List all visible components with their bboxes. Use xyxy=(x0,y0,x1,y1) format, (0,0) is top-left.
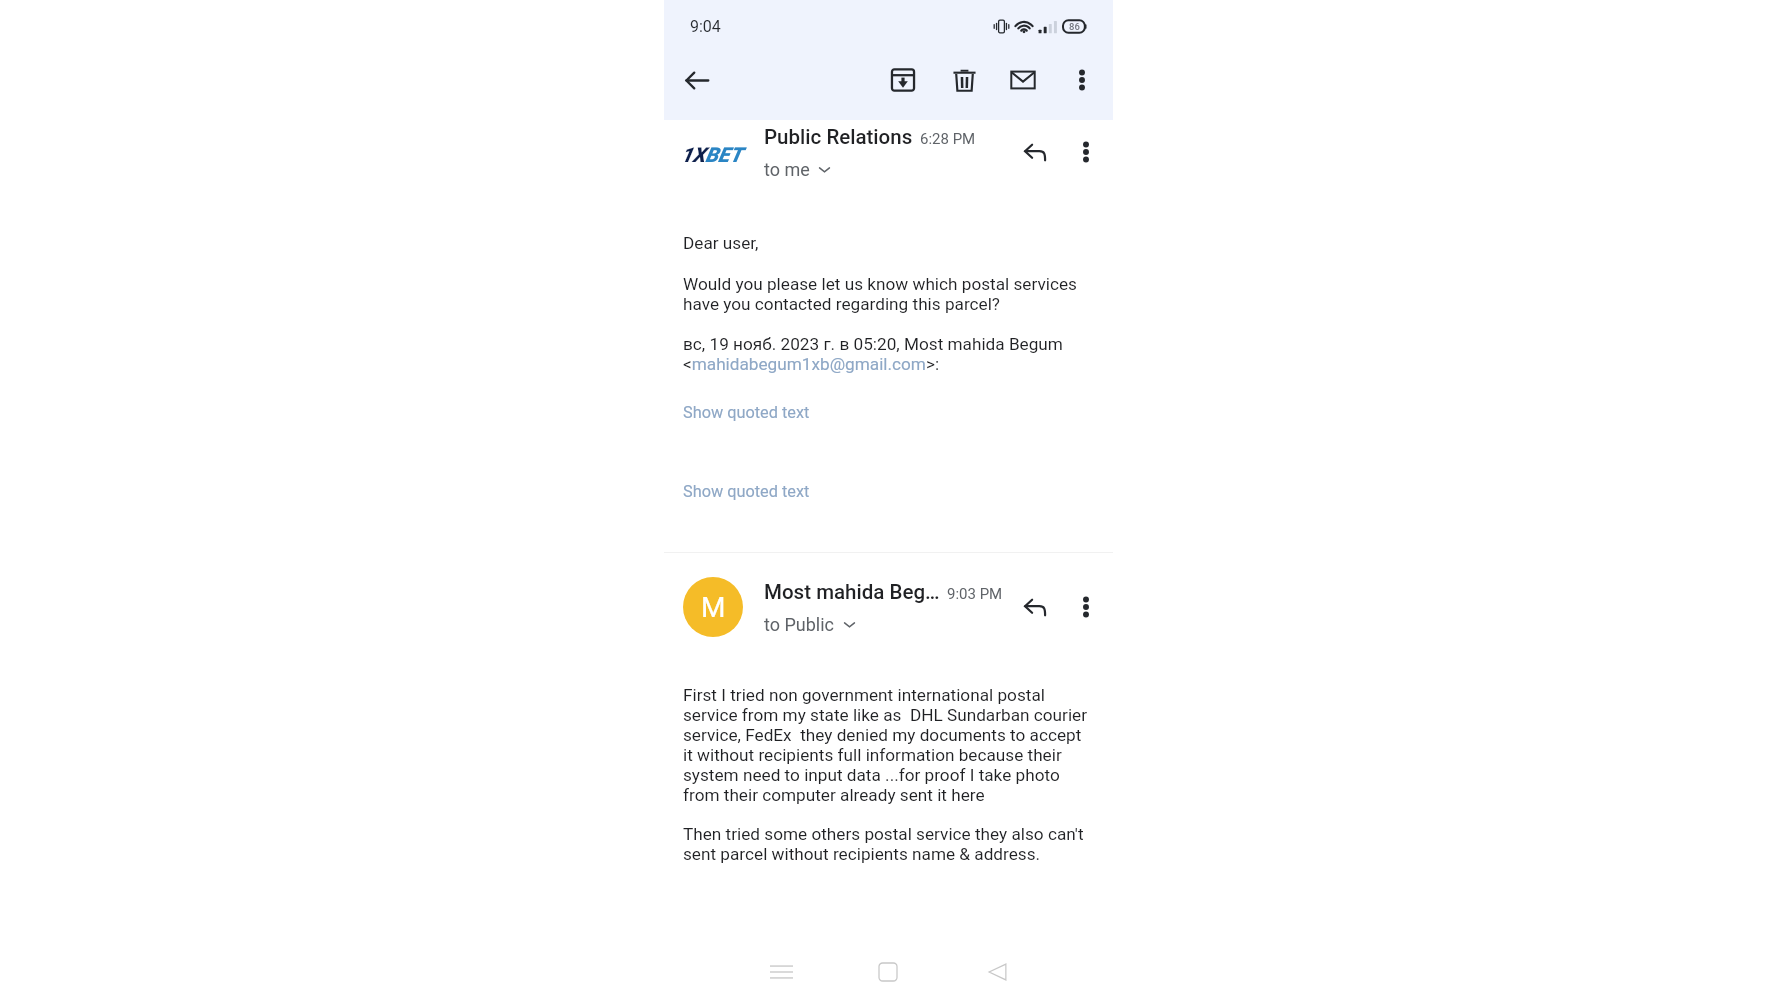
button[interactable]: Archive xyxy=(879,56,927,104)
button[interactable]: More options xyxy=(1064,130,1108,174)
staticText: Dear user, xyxy=(683,233,759,253)
staticText: вс, 19 нояб. 2023 г. в 05:20, Most mahid… xyxy=(683,334,1091,374)
button[interactable]: Show quoted text xyxy=(683,403,810,422)
staticText: 9:03 PM xyxy=(947,585,1003,603)
staticText: 86 xyxy=(1069,21,1080,32)
button[interactable]: Show quoted text xyxy=(683,482,810,501)
button[interactable]: to Public xyxy=(764,614,857,635)
staticText: to Public xyxy=(764,614,835,635)
staticText: 1XBET xyxy=(681,143,742,167)
button[interactable]: Delete xyxy=(940,56,988,104)
button[interactable]: Home xyxy=(864,948,912,996)
staticText: M xyxy=(701,591,726,624)
button[interactable]: Recent apps xyxy=(757,948,805,996)
staticText: Public Relations xyxy=(764,125,913,149)
staticText: to me xyxy=(764,159,810,180)
button[interactable]: Reply xyxy=(1012,583,1060,631)
button[interactable]: More options xyxy=(1064,585,1108,629)
button[interactable]: Back xyxy=(973,948,1021,996)
staticText: First I tried non government internation… xyxy=(683,685,1091,805)
staticText: Show quoted text xyxy=(683,482,810,501)
button[interactable] xyxy=(664,576,1113,638)
staticText: Then tried some others postal service th… xyxy=(683,824,1091,864)
staticText: Most mahida Beg… xyxy=(764,580,940,604)
staticText: 6:28 PM xyxy=(920,130,976,148)
staticText: 9:04 xyxy=(690,17,721,36)
button[interactable] xyxy=(664,121,1113,183)
button[interactable]: Reply xyxy=(1012,128,1060,176)
staticText: Would you please let us know which posta… xyxy=(683,274,1091,314)
button[interactable]: Mark unread xyxy=(999,56,1047,104)
staticText: Show quoted text xyxy=(683,403,810,422)
button[interactable]: More options xyxy=(1058,56,1106,104)
button[interactable]: Back xyxy=(673,56,721,104)
button[interactable]: to me xyxy=(764,159,832,180)
